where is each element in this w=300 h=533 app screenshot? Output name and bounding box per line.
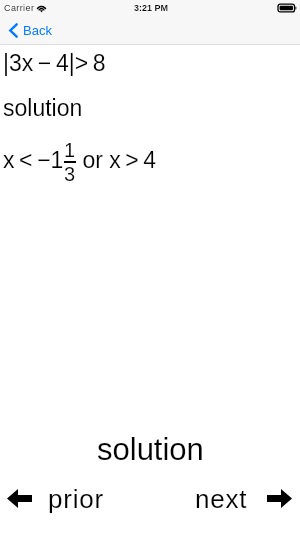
- staticText: solution: [97, 432, 204, 467]
- staticText: 1: [64, 139, 76, 161]
- staticText: |3x − 4|> 8: [3, 50, 106, 76]
- button[interactable]: next: [188, 480, 300, 517]
- staticText: 3: [64, 163, 76, 185]
- staticText: solution: [3, 95, 83, 121]
- staticText: or x > 4: [76, 147, 157, 173]
- button[interactable]: Back: [0, 18, 62, 43]
- staticText: Carrier: [4, 3, 35, 13]
- button[interactable]: Previous: [0, 480, 112, 517]
- staticText: Back: [23, 23, 52, 38]
- other: Next: [267, 489, 292, 508]
- staticText: x < −1: [3, 147, 64, 173]
- staticText: next: [195, 484, 248, 513]
- staticText: 3:21 PM: [134, 3, 169, 13]
- other: Previous: [7, 489, 32, 508]
- staticText: prior: [48, 484, 105, 513]
